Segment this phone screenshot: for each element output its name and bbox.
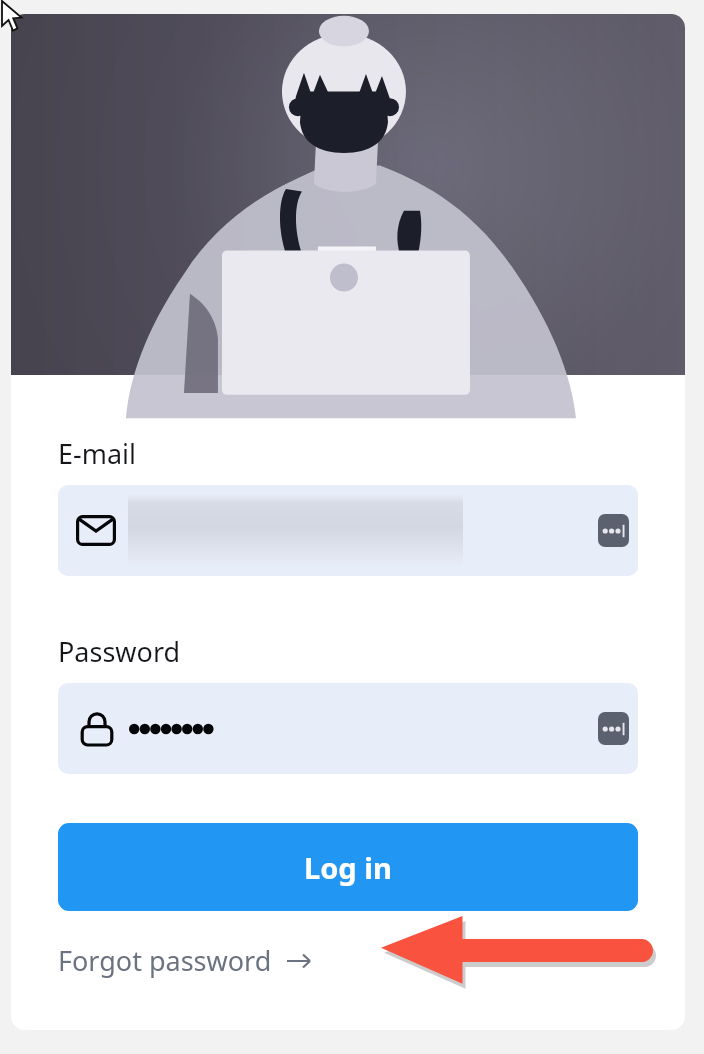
button[interactable]: Forgot password xyxy=(58,942,312,979)
button[interactable]: More options xyxy=(598,712,629,745)
staticText: Forgot password xyxy=(58,942,272,979)
button[interactable]: Log in xyxy=(58,823,638,911)
staticText: Log in xyxy=(304,848,392,887)
staticText: E-mail xyxy=(58,435,137,472)
staticText: Password xyxy=(58,633,181,670)
button[interactable]: More options xyxy=(598,514,629,547)
button[interactable]: More options xyxy=(58,485,638,576)
button[interactable]: More options xyxy=(58,683,638,774)
